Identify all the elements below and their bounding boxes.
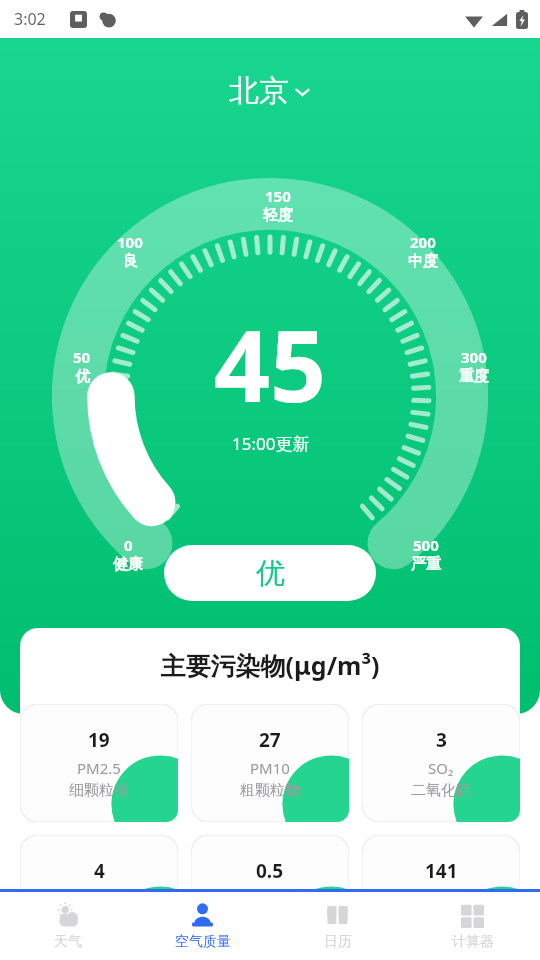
- button[interactable]: 优: [164, 545, 376, 601]
- staticText: 细颗粒物: [69, 781, 129, 800]
- staticText: 重度: [459, 367, 489, 386]
- button[interactable]: 27: [191, 704, 349, 822]
- staticText: 0.5: [256, 858, 284, 884]
- staticText: 4: [94, 858, 105, 884]
- staticText: 27: [259, 727, 281, 753]
- button[interactable]: 3: [362, 704, 520, 822]
- button[interactable]: 日历: [270, 892, 405, 960]
- button[interactable]: 北京: [221, 70, 319, 112]
- staticText: 天气: [54, 933, 82, 951]
- staticText: 200: [410, 232, 436, 252]
- staticText: 良: [123, 252, 138, 271]
- staticText: 45: [214, 297, 327, 430]
- button[interactable]: 天气: [0, 892, 135, 960]
- staticText: 轻度: [263, 206, 293, 225]
- other: 计算器: [458, 901, 487, 930]
- staticText: O₃: [433, 889, 450, 909]
- staticText: 严重: [411, 555, 441, 574]
- staticText: 优: [75, 367, 90, 386]
- other: 天气: [53, 901, 82, 930]
- button[interactable]: 4: [20, 835, 178, 953]
- staticText: 0: [124, 535, 133, 555]
- staticText: 二氧化硫: [411, 781, 471, 800]
- staticText: 50: [73, 347, 91, 367]
- staticText: SO₂: [428, 758, 454, 778]
- button[interactable]: 空气质量: [135, 892, 270, 960]
- staticText: 100: [117, 232, 143, 252]
- staticText: 15:00更新: [232, 432, 310, 455]
- staticText: 优: [256, 555, 285, 592]
- staticText: 3: [436, 727, 447, 753]
- staticText: PM10: [250, 758, 290, 778]
- staticText: 主要污染物(μg/m³): [20, 648, 520, 682]
- staticText: 150: [265, 186, 291, 206]
- staticText: 500: [413, 535, 439, 555]
- button[interactable]: 0.5: [191, 835, 349, 953]
- staticText: 计算器: [452, 933, 494, 951]
- staticText: 中度: [408, 252, 438, 271]
- staticText: PM2.5: [77, 758, 121, 778]
- staticText: NO₂: [85, 889, 114, 909]
- staticText: 3:02: [14, 8, 46, 30]
- staticText: 健康: [113, 555, 143, 574]
- staticText: 日历: [324, 933, 352, 951]
- staticText: 粗颗粒物: [240, 781, 300, 800]
- button[interactable]: 19: [20, 704, 178, 822]
- staticText: 二氧化氮: [69, 912, 129, 931]
- staticText: CO: [260, 889, 281, 909]
- staticText: 141: [425, 858, 458, 884]
- staticText: 19: [88, 727, 110, 753]
- staticText: 300: [461, 347, 487, 367]
- button[interactable]: 141: [362, 835, 520, 953]
- staticText: 北京: [229, 72, 289, 110]
- other: 空气质量: [188, 901, 217, 930]
- other: 日历: [323, 901, 352, 930]
- staticText: 空气质量: [175, 933, 231, 951]
- button[interactable]: 计算器: [405, 892, 540, 960]
